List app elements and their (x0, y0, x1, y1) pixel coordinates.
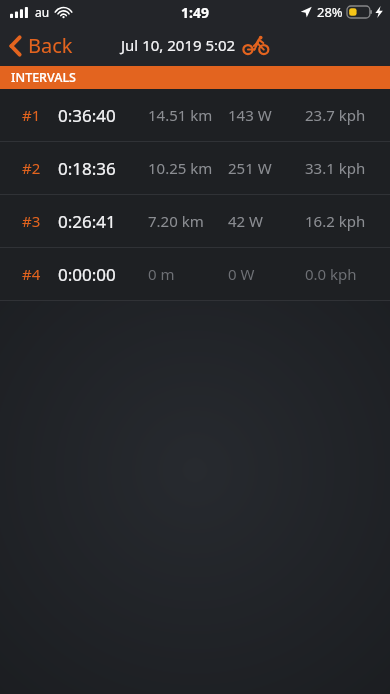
staticText: au (35, 4, 50, 20)
other: Cycling activity (243, 35, 269, 55)
staticText: #2 (22, 158, 41, 178)
staticText: 0:00:00 (58, 263, 116, 286)
button[interactable]: #2 (0, 142, 390, 194)
staticText: 23.7 kph (305, 105, 366, 125)
staticText: 0:36:40 (58, 104, 116, 127)
staticText: 14.51 km (148, 105, 213, 125)
staticText: 16.2 kph (305, 211, 366, 231)
button[interactable]: #4 (0, 248, 390, 300)
staticText: 251 W (228, 158, 272, 178)
staticText: 33.1 kph (305, 158, 366, 178)
staticText: 0 W (228, 264, 255, 284)
staticText: 143 W (228, 105, 272, 125)
staticText: #1 (22, 105, 41, 125)
button[interactable]: #1 (0, 89, 390, 141)
staticText: Back (28, 32, 73, 59)
staticText: 10.25 km (148, 158, 213, 178)
button[interactable]: #3 (0, 195, 390, 247)
button[interactable]: Back (0, 28, 85, 63)
staticText: #4 (22, 264, 41, 284)
staticText: Jul 10, 2019 5:02 (121, 35, 236, 55)
staticText: 1:49 (181, 3, 209, 22)
staticText: 0:26:41 (58, 210, 116, 233)
staticText: 7.20 km (148, 211, 204, 231)
staticText: 0.0 kph (305, 264, 357, 284)
staticText: #3 (22, 211, 41, 231)
staticText: 28% (317, 3, 343, 21)
staticText: 0 m (148, 264, 175, 284)
staticText: 0:18:36 (58, 157, 116, 180)
staticText: INTERVALS (11, 69, 76, 86)
staticText: 42 W (228, 211, 264, 231)
